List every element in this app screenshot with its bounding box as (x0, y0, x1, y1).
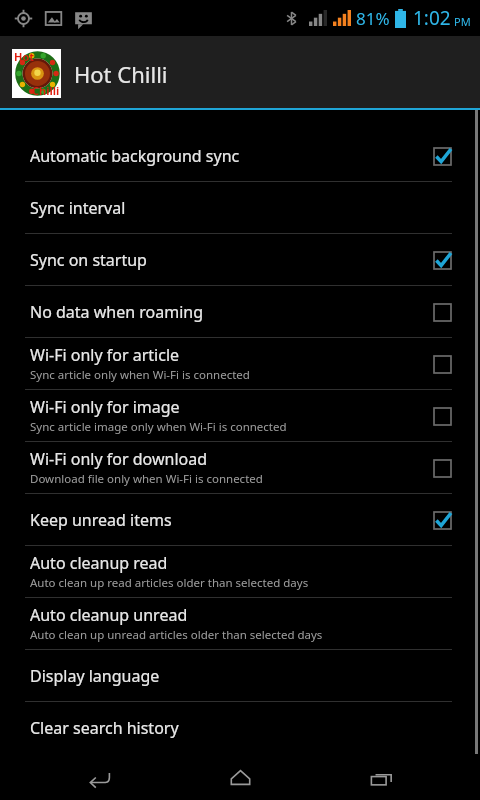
staticText: Display language (30, 665, 160, 687)
staticText: 1:02 (413, 5, 451, 31)
staticText: Auto clean up unread articles older than… (30, 627, 323, 643)
button[interactable]: Auto cleanup read (0, 546, 480, 597)
staticText: Automatic background sync (30, 145, 240, 167)
button[interactable]: Checked (428, 142, 456, 170)
staticText: Sync article only when Wi-Fi is connecte… (30, 367, 250, 383)
button[interactable]: Sync on startup (0, 234, 480, 285)
staticText: Auto cleanup read (30, 552, 168, 574)
staticText: Wi-Fi only for image (30, 396, 180, 418)
staticText: No data when roaming (30, 301, 204, 323)
button[interactable]: Unchecked (428, 454, 456, 482)
button[interactable]: Clear search history (0, 702, 480, 753)
staticText: PM (454, 14, 471, 29)
staticText: Wi-Fi only for download (30, 448, 208, 470)
staticText: Sync on startup (30, 249, 147, 271)
button[interactable]: Back (76, 754, 122, 800)
staticText: Clear search history (30, 717, 179, 739)
staticText: Hot Chilli (74, 59, 168, 89)
button[interactable]: Display language (0, 650, 480, 701)
button[interactable]: Wi-Fi only for article (0, 338, 480, 389)
staticText: Hot (14, 49, 35, 64)
staticText: Wi-Fi only for article (30, 344, 180, 366)
button[interactable]: Wi-Fi only for image (0, 390, 480, 441)
staticText: Chilli (32, 83, 60, 98)
staticText: Auto cleanup unread (30, 604, 188, 626)
button[interactable]: Checked (428, 246, 456, 274)
button[interactable]: Unchecked (428, 298, 456, 326)
button[interactable]: Sync interval (0, 182, 480, 233)
staticText: Download file only when Wi-Fi is connect… (30, 471, 263, 487)
staticText: Sync interval (30, 197, 126, 219)
button[interactable]: No data when roaming (0, 286, 480, 337)
button[interactable]: Home (217, 754, 263, 800)
staticText: 81% (356, 7, 390, 30)
staticText: Sync article image only when Wi-Fi is co… (30, 419, 287, 435)
button[interactable]: Keep unread items (0, 494, 480, 545)
staticText: Auto clean up read articles older than s… (30, 575, 309, 591)
button[interactable]: Checked (428, 506, 456, 534)
button[interactable]: Wi-Fi only for download (0, 442, 480, 493)
button[interactable]: Automatic background sync (0, 130, 480, 181)
staticText: Keep unread items (30, 509, 172, 531)
button[interactable]: Unchecked (428, 402, 456, 430)
button[interactable]: Unchecked (428, 350, 456, 378)
button[interactable]: Auto cleanup unread (0, 598, 480, 649)
button[interactable]: Recent apps (358, 754, 404, 800)
